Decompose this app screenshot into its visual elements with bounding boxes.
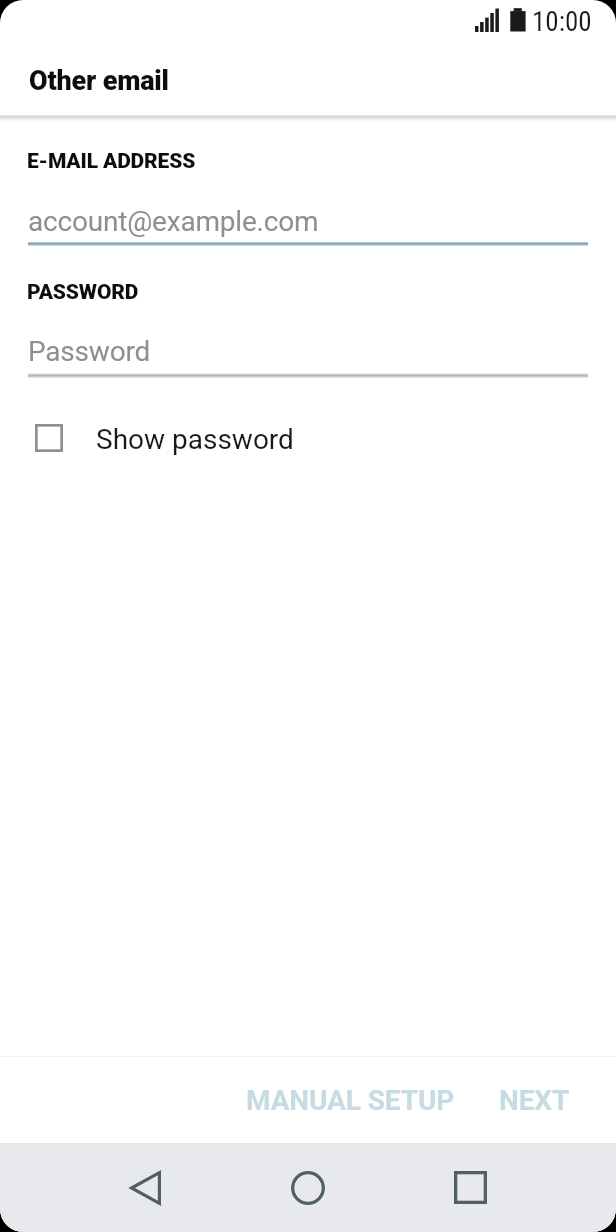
- staticText: Show password: [96, 423, 294, 456]
- staticText: NEXT: [499, 1084, 570, 1117]
- staticText: MANUAL SETUP: [246, 1084, 455, 1117]
- button[interactable]: NEXT: [489, 1070, 580, 1131]
- button[interactable]: Home: [255, 1143, 361, 1232]
- staticText: 10:00: [532, 6, 592, 38]
- button[interactable]: Recent apps: [417, 1143, 523, 1232]
- button[interactable]: Show password: [0, 404, 616, 470]
- staticText: account@example.com: [28, 205, 319, 238]
- staticText: Password: [28, 335, 151, 368]
- staticText: PASSWORD: [27, 280, 139, 305]
- button[interactable]: account@example.com: [28, 190, 588, 246]
- button[interactable]: Back: [92, 1143, 198, 1232]
- other: Battery full: [510, 8, 526, 33]
- button[interactable]: Password: [28, 320, 588, 376]
- button[interactable]: MANUAL SETUP: [236, 1070, 465, 1131]
- other: Signal strength: [475, 8, 500, 33]
- staticText: E-MAIL ADDRESS: [27, 149, 196, 174]
- staticText: Other email: [29, 65, 169, 97]
